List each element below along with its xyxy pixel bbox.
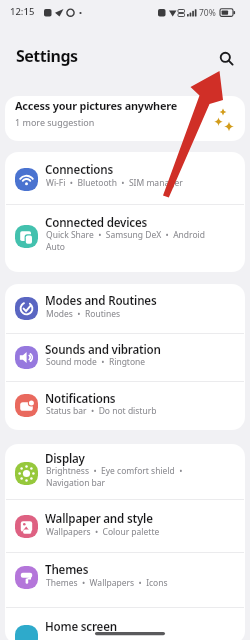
staticText: 1 more suggestion bbox=[15, 116, 95, 128]
staticText: Brightness • Eye comfort shield • Naviga… bbox=[46, 465, 183, 489]
button[interactable] bbox=[5, 552, 245, 608]
button[interactable] bbox=[5, 204, 245, 273]
button[interactable] bbox=[5, 381, 245, 430]
button[interactable] bbox=[5, 499, 245, 552]
staticText: Home screen bbox=[45, 619, 117, 635]
staticText: Wallpaper and style bbox=[45, 511, 153, 527]
staticText: Themes bbox=[45, 562, 89, 578]
button[interactable] bbox=[214, 46, 238, 70]
staticText: Settings bbox=[16, 45, 78, 67]
button[interactable] bbox=[5, 96, 245, 141]
staticText: Status bar • Do not disturb bbox=[46, 405, 157, 417]
staticText: Sound mode • Ringtone bbox=[46, 356, 146, 368]
staticText: Modes • Routines bbox=[46, 308, 121, 320]
staticText: Modes and Routines bbox=[45, 293, 157, 309]
staticText: Notifications bbox=[45, 391, 116, 407]
button[interactable] bbox=[5, 333, 245, 382]
button[interactable] bbox=[5, 152, 245, 204]
staticText: Wallpapers • Colour palette bbox=[46, 526, 160, 538]
button[interactable] bbox=[5, 444, 245, 499]
staticText: Sounds and vibration bbox=[45, 342, 161, 358]
staticText: Wi-Fi • Bluetooth • SIM manager bbox=[46, 177, 183, 189]
staticText: Connected devices bbox=[45, 215, 148, 231]
staticText: Themes • Wallpapers • Icons bbox=[46, 577, 168, 589]
staticText: 70% bbox=[199, 7, 216, 19]
staticText: Quick Share • Samsung DeX • Android Auto bbox=[46, 229, 206, 253]
button[interactable] bbox=[5, 284, 245, 333]
button[interactable] bbox=[5, 607, 245, 640]
staticText: Display bbox=[45, 451, 85, 467]
staticText: 12:15 bbox=[10, 5, 35, 18]
staticText: Connections bbox=[45, 162, 114, 178]
staticText: Access your pictures anywhere bbox=[15, 98, 177, 113]
